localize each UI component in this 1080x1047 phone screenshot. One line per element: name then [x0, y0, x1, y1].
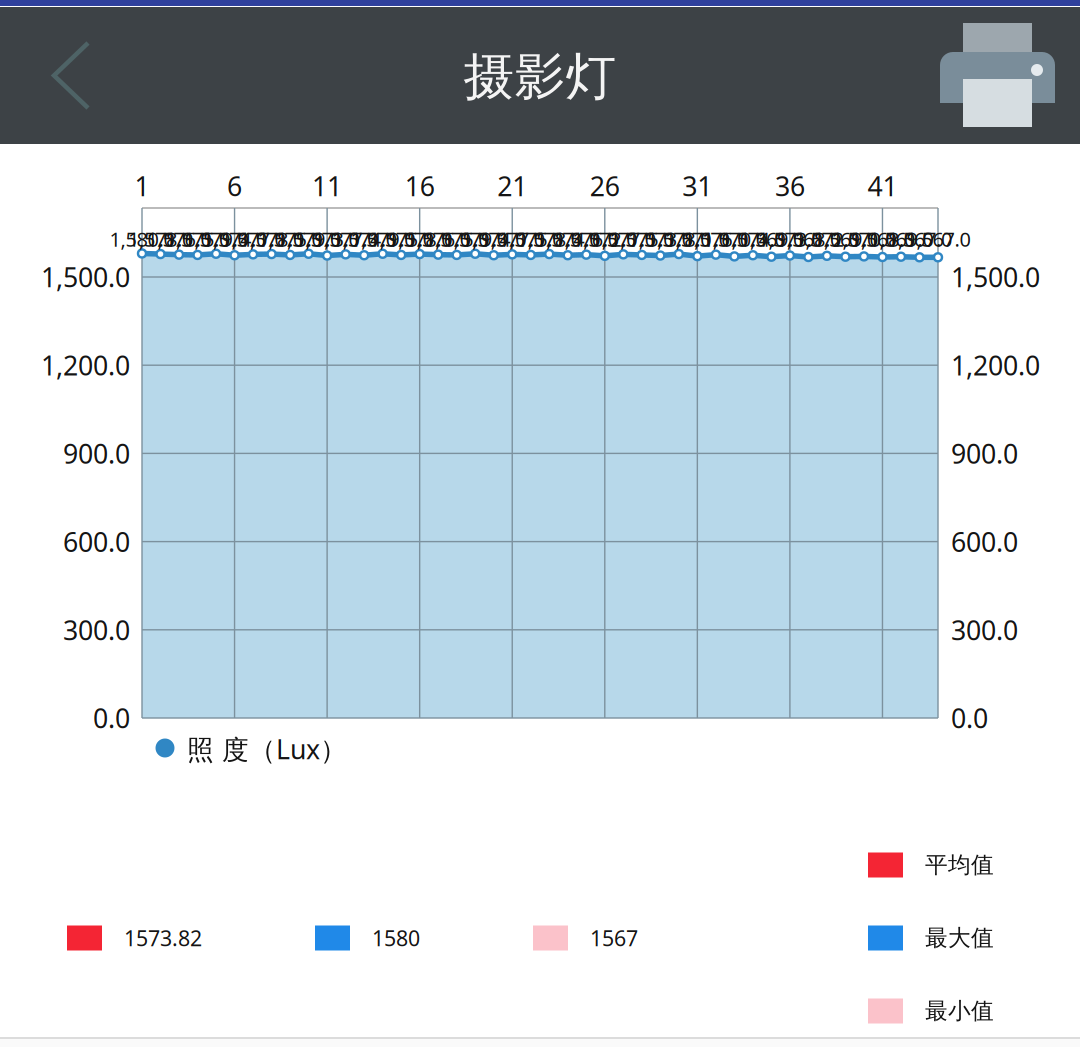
- staticText: 26: [590, 168, 620, 204]
- staticText: 1,577.0: [313, 226, 378, 252]
- staticText: 1,576.0: [683, 226, 748, 252]
- staticText: 1,569.0: [813, 226, 878, 252]
- staticText: 1,574.0: [535, 226, 600, 252]
- staticText: 0.0: [951, 700, 988, 736]
- staticText: 摄影灯: [463, 46, 616, 108]
- staticText: 1: [134, 168, 149, 204]
- staticText: 11: [312, 168, 342, 204]
- staticText: 31: [682, 168, 712, 204]
- button[interactable]: Back: [11, 15, 131, 135]
- staticText: 1,569.0: [868, 226, 933, 252]
- staticText: 600.0: [63, 524, 130, 559]
- staticText: 最小值: [925, 997, 994, 1025]
- staticText: 1,200.0: [951, 347, 1040, 383]
- staticText: 1567: [590, 924, 638, 952]
- staticText: 1,580.0: [109, 226, 174, 252]
- staticText: 1,575.0: [369, 226, 434, 252]
- staticText: 1,500.0: [951, 259, 1040, 295]
- staticText: 1,575.0: [498, 226, 563, 252]
- staticText: 1,575.0: [258, 226, 323, 252]
- staticText: 1,574.0: [461, 226, 526, 252]
- staticText: 1,574.0: [202, 226, 267, 252]
- staticText: 1,575.0: [165, 226, 230, 252]
- staticText: 1,570.0: [702, 226, 767, 252]
- staticText: 1,578.0: [646, 226, 711, 252]
- staticText: 1,575.0: [609, 226, 674, 252]
- staticText: 1,567.0: [905, 226, 970, 252]
- staticText: 1,577.0: [591, 226, 656, 252]
- staticText: 1,576.0: [146, 226, 211, 252]
- staticText: 300.0: [951, 612, 1018, 647]
- staticText: 1,574.0: [720, 226, 785, 252]
- staticText: 1580: [372, 924, 420, 952]
- staticText: 1,573.0: [295, 226, 360, 252]
- staticText: 6: [227, 168, 242, 204]
- staticText: 1,572.0: [794, 226, 859, 252]
- staticText: 1,568.0: [850, 226, 915, 252]
- staticText: 1,573.0: [628, 226, 693, 252]
- staticText: 1,578.0: [128, 226, 193, 252]
- staticText: 36: [775, 168, 805, 204]
- staticText: 21: [497, 168, 527, 204]
- staticText: 600.0: [951, 524, 1018, 559]
- staticText: 1,500.0: [41, 259, 130, 295]
- button[interactable]: Print: [940, 10, 1055, 127]
- staticText: 900.0: [63, 436, 130, 471]
- staticText: 1,573.0: [757, 226, 822, 252]
- staticText: 1,579.0: [276, 226, 341, 252]
- staticText: 1,567.0: [887, 226, 952, 252]
- staticText: 1,572.0: [572, 226, 637, 252]
- staticText: 300.0: [63, 612, 130, 647]
- staticText: 平均值: [925, 851, 994, 879]
- staticText: 1,579.0: [350, 226, 415, 252]
- staticText: 1,579.0: [443, 226, 508, 252]
- staticText: 16: [405, 168, 435, 204]
- staticText: 1,568.0: [776, 226, 841, 252]
- staticText: 1,577.0: [221, 226, 286, 252]
- staticText: 1,577.0: [480, 226, 545, 252]
- staticText: 1,576.0: [554, 226, 619, 252]
- staticText: 1,570.0: [831, 226, 896, 252]
- staticText: 1,579.0: [183, 226, 248, 252]
- staticText: 1,576.0: [406, 226, 471, 252]
- staticText: 1,578.0: [239, 226, 304, 252]
- staticText: 1,575.0: [424, 226, 489, 252]
- staticText: 1,571.0: [665, 226, 730, 252]
- staticText: 最大值: [925, 924, 994, 952]
- staticText: 1,578.0: [517, 226, 582, 252]
- staticText: 900.0: [951, 436, 1018, 471]
- staticText: 1573.82: [124, 924, 202, 952]
- staticText: 0.0: [93, 700, 130, 736]
- staticText: 1,200.0: [41, 347, 130, 383]
- staticText: 1,574.0: [332, 226, 397, 252]
- staticText: 1,578.0: [387, 226, 452, 252]
- staticText: 1,569.0: [739, 226, 804, 252]
- staticText: 41: [867, 168, 897, 204]
- staticText: 照 度（Lux）: [187, 731, 347, 767]
